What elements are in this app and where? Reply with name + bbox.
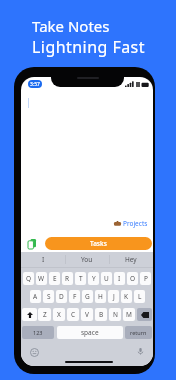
- button[interactable]: Tasks: [45, 237, 152, 250]
- button[interactable]: S: [43, 290, 54, 303]
- button[interactable]: Q: [23, 272, 34, 285]
- staticText: O: [130, 274, 136, 283]
- button[interactable]: P: [140, 272, 151, 285]
- staticText: J: [113, 292, 115, 301]
- button[interactable]: space: [57, 326, 123, 339]
- button[interactable]: You: [65, 252, 109, 267]
- staticText: D: [59, 292, 64, 301]
- button[interactable]: Dictate: [136, 347, 145, 356]
- button[interactable]: Y: [88, 272, 99, 285]
- button[interactable]: A: [30, 290, 41, 303]
- button[interactable]: L: [134, 290, 145, 303]
- button[interactable]: Hey: [109, 252, 153, 267]
- button[interactable]: I: [114, 272, 125, 285]
- staticText: F: [73, 292, 77, 301]
- staticText: V: [85, 310, 89, 319]
- staticText: space: [81, 328, 99, 337]
- button[interactable]: O: [127, 272, 138, 285]
- staticText: H: [98, 292, 103, 301]
- staticText: I: [42, 255, 45, 264]
- button[interactable]: W: [36, 272, 47, 285]
- staticText: Lightning Fast: [32, 36, 145, 58]
- button[interactable]: M: [123, 308, 135, 321]
- button[interactable]: C: [67, 308, 79, 321]
- staticText: Tasks: [90, 239, 107, 248]
- staticText: return: [130, 329, 147, 336]
- button[interactable]: Projects: [114, 218, 148, 228]
- staticText: U: [104, 274, 109, 283]
- button[interactable]: R: [62, 272, 73, 285]
- button[interactable]: J: [108, 290, 119, 303]
- staticText: 123: [33, 329, 43, 336]
- button[interactable]: B: [95, 308, 107, 321]
- staticText: S: [47, 292, 51, 301]
- button[interactable]: Emoji: [30, 348, 39, 357]
- staticText: You: [81, 255, 93, 264]
- button[interactable]: K: [121, 290, 132, 303]
- staticText: R: [65, 274, 70, 283]
- staticText: P: [144, 274, 148, 283]
- button[interactable]: X: [53, 308, 65, 321]
- staticText: Q: [26, 274, 32, 283]
- staticText: X: [57, 310, 61, 319]
- staticText: M: [126, 310, 132, 319]
- button[interactable]: D: [56, 290, 67, 303]
- staticText: Y: [92, 274, 96, 283]
- staticText: N: [113, 310, 118, 319]
- staticText: 3:57: [30, 81, 40, 88]
- button[interactable]: Shift: [22, 308, 37, 321]
- button[interactable]: Return: [125, 326, 152, 339]
- button[interactable]: H: [95, 290, 106, 303]
- button[interactable]: E: [49, 272, 60, 285]
- staticText: Take Notes: [32, 16, 110, 36]
- staticText: B: [99, 310, 104, 319]
- button[interactable]: Z: [38, 308, 51, 321]
- staticText: Hey: [125, 255, 137, 264]
- staticText: A: [33, 292, 38, 301]
- button[interactable]: G: [82, 290, 93, 303]
- staticText: E: [53, 274, 57, 283]
- staticText: Z: [43, 310, 47, 319]
- button[interactable]: Numbers: [22, 326, 54, 339]
- button[interactable]: U: [101, 272, 112, 285]
- button[interactable]: V: [81, 308, 93, 321]
- staticText: W: [38, 274, 45, 283]
- button[interactable]: Backspace: [137, 308, 152, 321]
- staticText: Projects: [123, 219, 148, 228]
- button[interactable]: F: [69, 290, 80, 303]
- button[interactable]: T: [75, 272, 86, 285]
- staticText: I: [118, 274, 121, 283]
- staticText: K: [124, 292, 129, 301]
- staticText: T: [79, 274, 83, 283]
- staticText: G: [85, 292, 90, 301]
- staticText: L: [138, 292, 142, 301]
- button[interactable]: N: [109, 308, 121, 321]
- staticText: C: [71, 310, 76, 319]
- button[interactable]: I: [21, 252, 65, 267]
